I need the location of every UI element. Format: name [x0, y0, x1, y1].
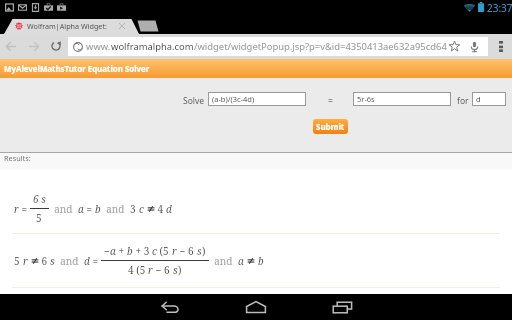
staticText: 4 (5 [128, 263, 148, 277]
staticText: and [49, 202, 78, 216]
staticText: 23:37 [487, 1, 512, 15]
staticText: and [209, 254, 238, 268]
staticText: a [238, 254, 244, 268]
staticText: a [78, 202, 84, 216]
staticText: www. [86, 40, 111, 53]
staticText: = [19, 202, 30, 216]
staticText: /widget/widgetPopup.jsp?p=v&id=4350413ae… [194, 40, 447, 53]
staticText: ) [178, 263, 182, 277]
staticText: 6 [39, 254, 50, 268]
button[interactable]: More options [492, 34, 512, 59]
staticText: c [139, 202, 144, 216]
staticText: (5 [157, 244, 172, 258]
staticText: 3 [130, 202, 139, 216]
staticText: 5 [14, 254, 23, 268]
button[interactable]: Forward [22, 34, 45, 59]
staticText: Results: [4, 153, 31, 163]
staticText: Solve [183, 95, 205, 107]
staticText: = [90, 254, 101, 268]
button[interactable]: Voice search [466, 37, 484, 56]
button[interactable]: Submit [313, 119, 348, 134]
staticText: 6 s [33, 192, 46, 206]
staticText: b [258, 254, 264, 268]
staticText: MyAlevelMathsTutor Equation Solver [4, 64, 150, 75]
staticText: d [84, 254, 90, 268]
button[interactable]: Bookmark [446, 37, 462, 56]
button[interactable]: (a-b)/(3c-4d) [209, 93, 305, 105]
staticText: and [101, 202, 130, 216]
staticText: d [476, 94, 481, 104]
button[interactable]: Wolfram|Alpha Widget: [4, 18, 138, 34]
staticText: for [457, 95, 469, 107]
button[interactable]: Recent apps [320, 294, 364, 320]
button[interactable]: 5r-6s [354, 93, 450, 105]
staticText: r [14, 202, 19, 216]
staticText: − [104, 244, 110, 258]
staticText: r [172, 244, 177, 258]
staticText: Wolfram|Alpha Widget: [27, 21, 107, 31]
button[interactable]: d [473, 93, 505, 105]
staticText: Submit [316, 121, 345, 132]
staticText: b [127, 244, 133, 258]
staticText: − 6 [153, 263, 173, 277]
staticText: c [152, 244, 157, 258]
staticText: r [23, 254, 28, 268]
staticText: − 6 [177, 244, 197, 258]
staticText: 5r-6s [357, 94, 375, 104]
staticText: = [328, 95, 333, 107]
staticText: b [95, 202, 101, 216]
staticText: + [116, 244, 127, 258]
staticText: s [173, 263, 178, 277]
staticText: s [197, 244, 202, 258]
button[interactable]: Back [148, 294, 192, 320]
button[interactable]: Reload [45, 34, 68, 59]
button[interactable]: Home [234, 294, 278, 320]
button[interactable]: www. [68, 37, 488, 56]
staticText: 4 [155, 202, 166, 216]
staticText: 5 [36, 211, 42, 225]
staticText: and [55, 254, 84, 268]
staticText: wolframalpha.com [111, 40, 194, 53]
button[interactable]: Back [0, 34, 22, 59]
staticText: a [110, 244, 116, 258]
staticText: (a-b)/(3c-4d) [212, 94, 255, 104]
staticText: = [84, 202, 95, 216]
staticText: s [50, 254, 55, 268]
staticText: d [166, 202, 172, 216]
staticText: r [148, 263, 153, 277]
staticText: ) [202, 244, 206, 258]
staticText: + 3 [133, 244, 152, 258]
